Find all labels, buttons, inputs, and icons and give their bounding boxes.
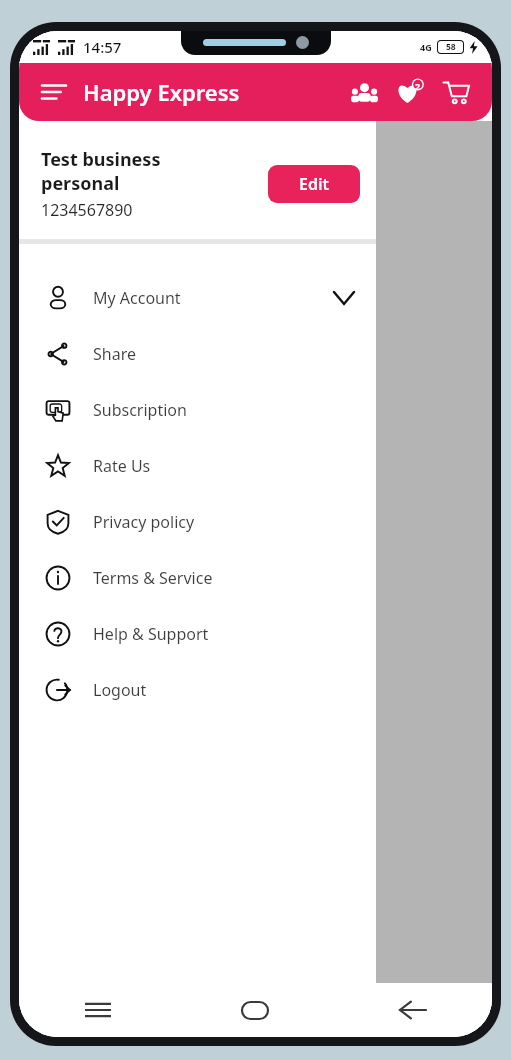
staticText: Subscription <box>93 399 187 421</box>
button[interactable]: Favourites, 2 items <box>390 72 430 112</box>
button[interactable]: Rate Us <box>19 438 376 494</box>
staticText: Rate Us <box>93 455 151 477</box>
button[interactable]: Share <box>19 326 376 382</box>
staticText: Help & Support <box>93 623 209 645</box>
button[interactable]: My Account <box>19 270 376 326</box>
button[interactable]: Home <box>176 983 334 1037</box>
staticText: Test business personal <box>41 147 161 195</box>
staticText: Privacy policy <box>93 511 195 533</box>
staticText: Share <box>93 343 136 365</box>
staticText: Terms & Service <box>93 567 213 589</box>
button[interactable]: View all <box>207 559 492 585</box>
button[interactable]: Edit <box>268 165 360 203</box>
staticText: 4G <box>420 41 432 53</box>
staticText: 58 <box>446 41 456 53</box>
staticText: Edit <box>299 173 329 195</box>
button[interactable]: Open navigation menu <box>35 73 73 111</box>
button[interactable]: Terms & Service <box>19 550 376 606</box>
staticText: 14:57 <box>83 37 122 57</box>
staticText: Happy Express <box>83 77 240 107</box>
button[interactable]: Back <box>334 983 492 1037</box>
button[interactable]: Subscription <box>19 382 376 438</box>
button[interactable]: Privacy policy <box>19 494 376 550</box>
button[interactable]: Help & Support <box>19 606 376 662</box>
button[interactable]: Shopping cart <box>436 72 476 112</box>
button[interactable]: Logout <box>19 662 376 718</box>
staticText: My Account <box>93 287 181 309</box>
staticText: Logout <box>93 679 147 701</box>
staticText: 1234567890 <box>41 199 133 221</box>
button[interactable]: Recents <box>19 983 176 1037</box>
button[interactable] <box>165 601 305 697</box>
button[interactable] <box>169 135 289 255</box>
staticText: View all <box>207 559 274 585</box>
button[interactable]: View all <box>207 313 492 339</box>
staticText: 2 <box>415 80 421 92</box>
button[interactable]: Contacts <box>344 72 384 112</box>
